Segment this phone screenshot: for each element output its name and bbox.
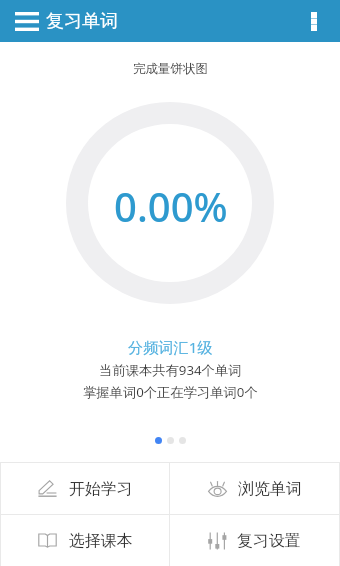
staticText: 选择课本	[69, 531, 133, 551]
staticText: 当前课本共有934个单词	[99, 361, 242, 379]
staticText: 复习设置	[237, 531, 301, 551]
button[interactable]: 复习设置	[170, 515, 339, 566]
staticText: 复习单词	[46, 10, 118, 33]
button[interactable]: 开始学习	[1, 463, 169, 514]
staticText: 0.00%	[114, 179, 228, 233]
button[interactable]: 选择课本	[1, 515, 169, 566]
staticText: 浏览单词	[238, 479, 302, 499]
button[interactable]: Menu	[10, 4, 44, 38]
staticText: 分频词汇1级	[128, 337, 213, 358]
button[interactable]: More options	[302, 9, 326, 33]
staticText: 完成量饼状图	[133, 61, 208, 77]
staticText: 开始学习	[69, 479, 133, 499]
button[interactable]: 浏览单词	[170, 463, 339, 514]
staticText: 掌握单词0个正在学习单词0个	[83, 383, 258, 401]
